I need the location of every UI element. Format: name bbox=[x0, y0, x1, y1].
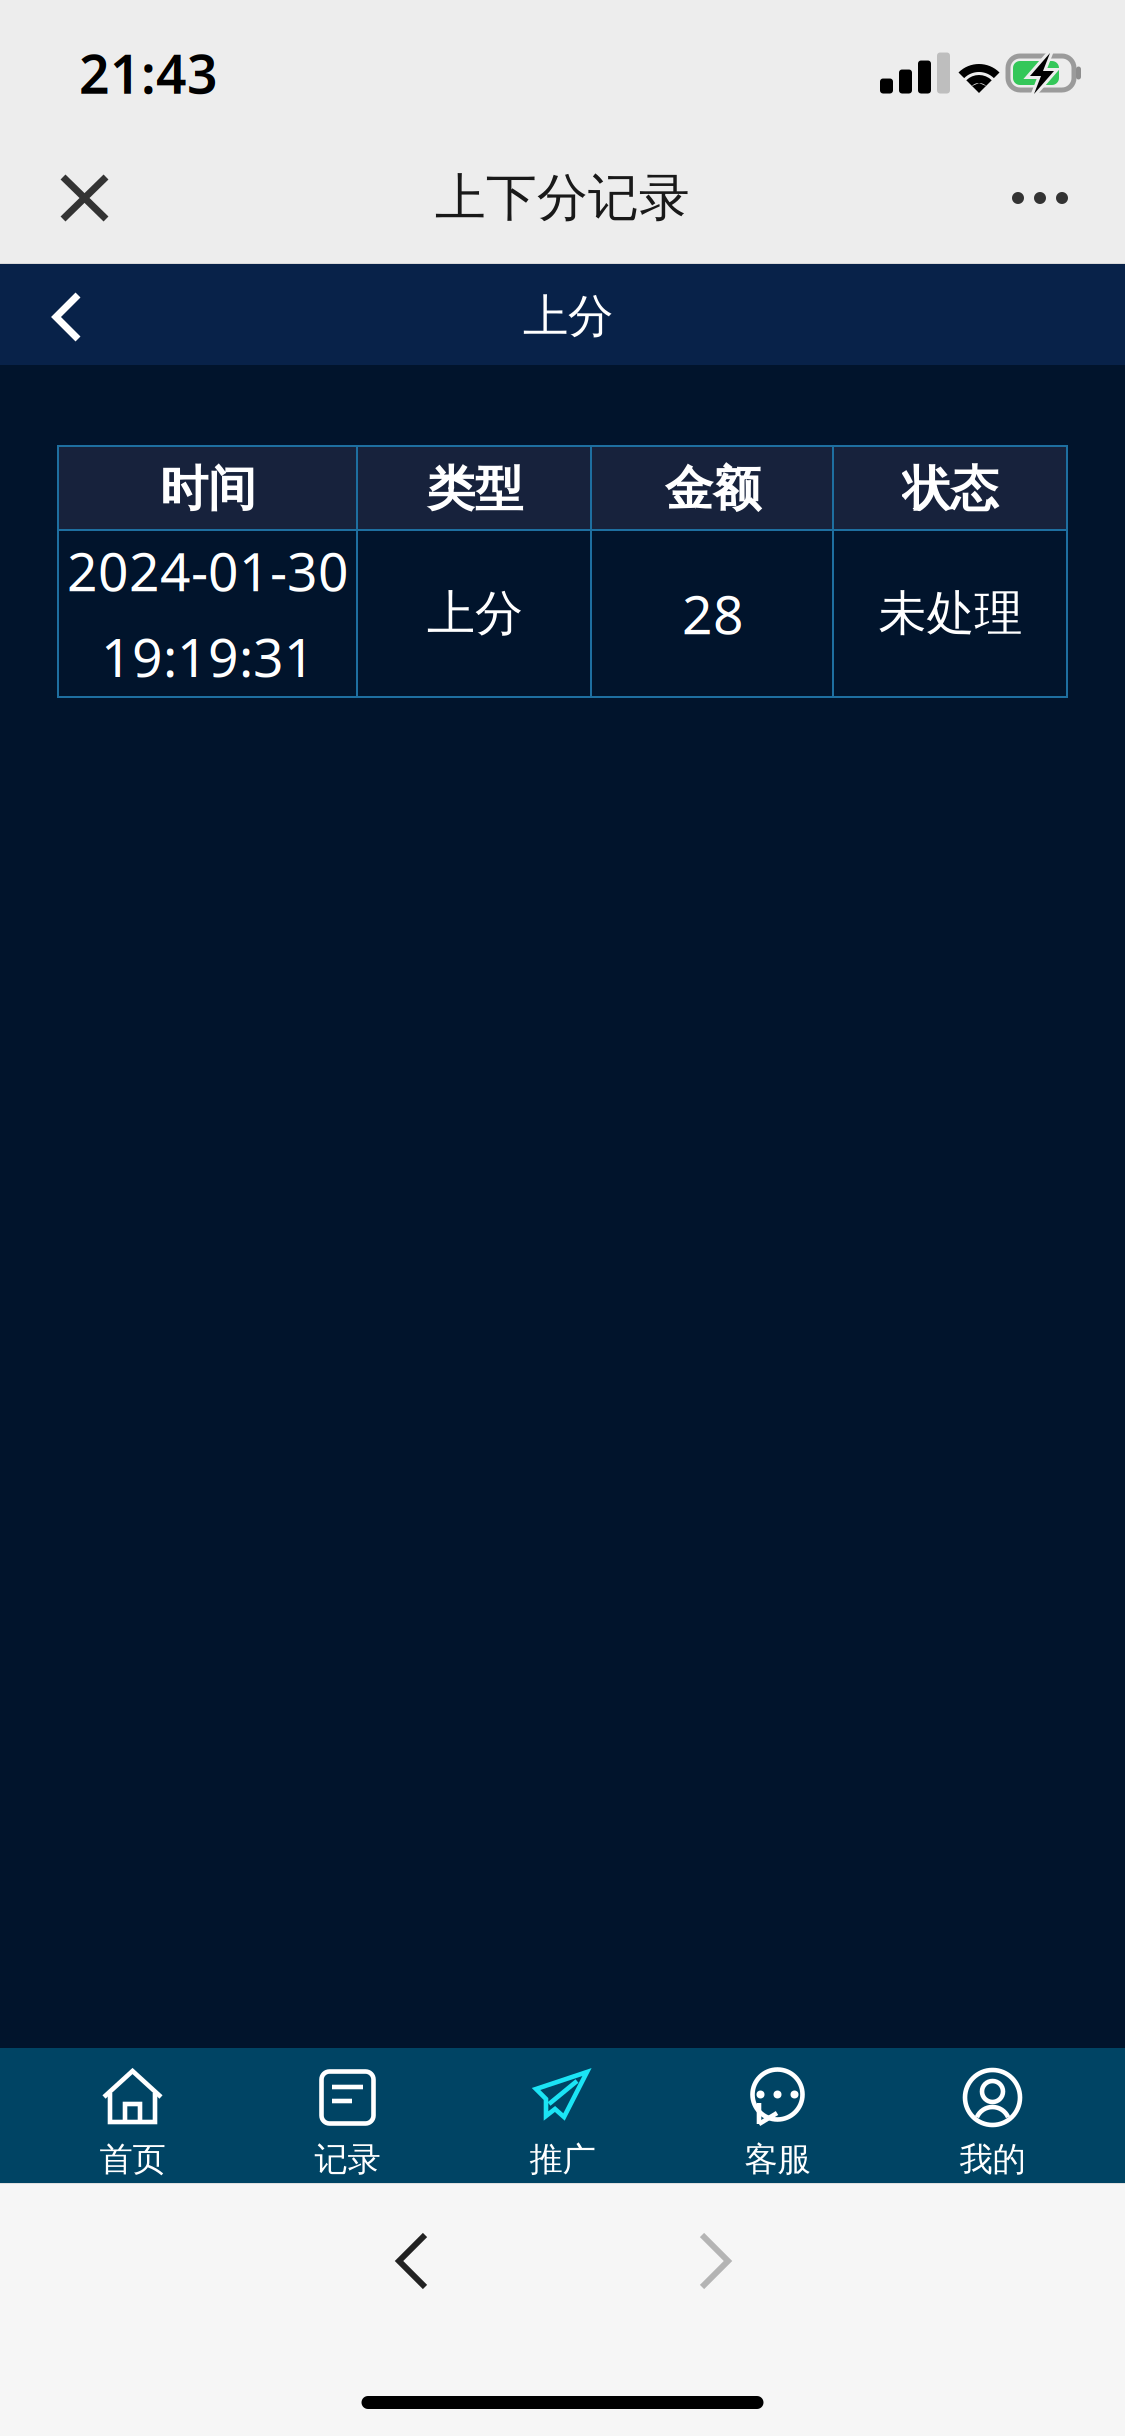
button[interactable]: Back bbox=[355, 2211, 465, 2311]
button[interactable]: 推广 bbox=[455, 2048, 670, 2183]
button[interactable]: Close bbox=[30, 138, 140, 258]
staticText: 类型 bbox=[427, 459, 523, 518]
staticText: 状态 bbox=[902, 459, 998, 518]
staticText: 未处理 bbox=[878, 584, 1022, 643]
button[interactable]: 首页 bbox=[25, 2048, 240, 2183]
staticText: 我的 bbox=[959, 2139, 1025, 2180]
button[interactable]: 客服 bbox=[670, 2048, 885, 2183]
staticText: 客服 bbox=[744, 2139, 810, 2180]
button[interactable]: Forward bbox=[662, 2211, 772, 2311]
staticText: 上分 bbox=[523, 289, 613, 344]
staticText: 首页 bbox=[99, 2139, 165, 2180]
button[interactable]: 记录 bbox=[240, 2048, 455, 2183]
button[interactable]: Back bbox=[16, 264, 116, 365]
staticText: 19:19:31 bbox=[101, 621, 315, 692]
staticText: 上下分记录 bbox=[435, 167, 690, 229]
button[interactable]: More bbox=[985, 138, 1095, 258]
staticText: 上分 bbox=[427, 584, 523, 643]
staticText: 记录 bbox=[314, 2139, 380, 2180]
staticText: 金额 bbox=[665, 459, 761, 518]
staticText: 21:43 bbox=[79, 38, 218, 108]
staticText: 28 bbox=[682, 578, 744, 649]
button[interactable]: 我的 bbox=[885, 2048, 1100, 2183]
staticText: 推广 bbox=[529, 2139, 595, 2180]
staticText: 2024-01-30 bbox=[67, 535, 349, 606]
staticText: 时间 bbox=[160, 459, 256, 518]
